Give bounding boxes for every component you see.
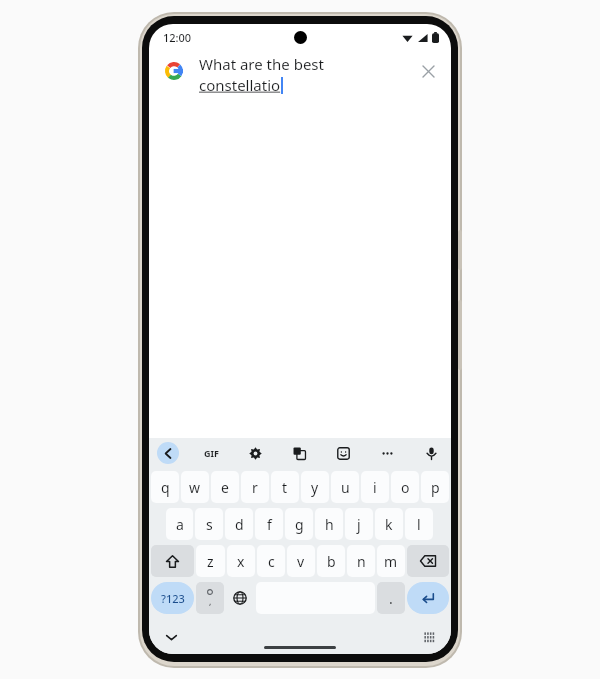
button[interactable]: Period — [377, 582, 405, 614]
staticText: 12:00 — [163, 30, 192, 45]
button[interactable]: w — [181, 471, 209, 503]
button[interactable]: Change language — [226, 582, 254, 614]
staticText: q — [161, 478, 170, 497]
staticText: ?123 — [161, 591, 185, 606]
button[interactable]: r — [241, 471, 269, 503]
button[interactable]: Backspace — [407, 545, 449, 577]
button[interactable]: Comma — [196, 582, 224, 614]
staticText: d — [235, 515, 244, 534]
staticText: t — [282, 478, 288, 497]
staticText: What are the best — [199, 54, 324, 74]
button[interactable]: a — [166, 508, 193, 540]
staticText: u — [341, 478, 350, 497]
button[interactable]: p — [421, 471, 449, 503]
button[interactable]: q — [151, 471, 179, 503]
button[interactable]: t — [271, 471, 299, 503]
staticText: p — [431, 478, 440, 497]
button[interactable]: x — [227, 545, 255, 577]
staticText: k — [385, 515, 393, 534]
button[interactable]: e — [211, 471, 239, 503]
staticText: s — [206, 515, 213, 534]
button[interactable]: z — [196, 545, 225, 577]
button[interactable]: i — [361, 471, 389, 503]
staticText: . — [389, 589, 393, 608]
button[interactable]: k — [375, 508, 403, 540]
staticText: o — [401, 478, 410, 497]
staticText: v — [297, 552, 305, 571]
button[interactable]: y — [301, 471, 329, 503]
staticText: b — [327, 552, 336, 571]
button[interactable]: s — [195, 508, 223, 540]
staticText: j — [357, 515, 361, 534]
staticText: w — [189, 478, 201, 497]
staticText: x — [237, 552, 245, 571]
button[interactable]: d — [225, 508, 253, 540]
staticText: n — [357, 552, 366, 571]
button[interactable]: Back — [157, 442, 179, 464]
button[interactable]: Google — [161, 58, 187, 84]
staticText: h — [325, 515, 334, 534]
button[interactable]: Close — [415, 58, 441, 84]
button[interactable]: Hide keyboard — [159, 625, 183, 649]
button[interactable]: More options — [375, 441, 399, 465]
staticText: f — [267, 515, 272, 534]
button[interactable]: b — [317, 545, 345, 577]
button[interactable]: Voice input — [419, 441, 443, 465]
button[interactable]: v — [287, 545, 315, 577]
button[interactable]: h — [315, 508, 343, 540]
button[interactable]: f — [255, 508, 283, 540]
button[interactable]: Settings — [243, 441, 267, 465]
button[interactable]: c — [257, 545, 285, 577]
staticText: , — [209, 595, 212, 607]
staticText: z — [207, 552, 214, 571]
button[interactable]: ?123 — [151, 582, 194, 614]
button[interactable]: u — [331, 471, 359, 503]
staticText: a — [176, 515, 184, 534]
button[interactable]: Shift — [151, 545, 194, 577]
staticText: l — [417, 515, 421, 534]
staticText: r — [252, 478, 258, 497]
button[interactable]: Translate — [287, 441, 311, 465]
staticText: g — [295, 515, 304, 534]
button[interactable]: m — [377, 545, 405, 577]
staticText: m — [384, 552, 398, 571]
staticText: e — [221, 478, 229, 497]
button[interactable]: n — [347, 545, 375, 577]
button[interactable]: GIF — [199, 441, 223, 465]
button[interactable]: Stickers — [331, 441, 355, 465]
staticText: y — [311, 478, 319, 497]
button[interactable]: l — [405, 508, 433, 540]
staticText: GIF — [204, 447, 219, 459]
button[interactable]: Enter — [407, 582, 449, 614]
staticText: i — [373, 478, 377, 497]
button[interactable]: o — [391, 471, 419, 503]
button[interactable]: g — [285, 508, 313, 540]
button[interactable]: j — [345, 508, 373, 540]
staticText: c — [268, 552, 275, 571]
staticText: constellatio — [199, 75, 281, 95]
button[interactable]: Keyboard layout — [417, 625, 441, 649]
